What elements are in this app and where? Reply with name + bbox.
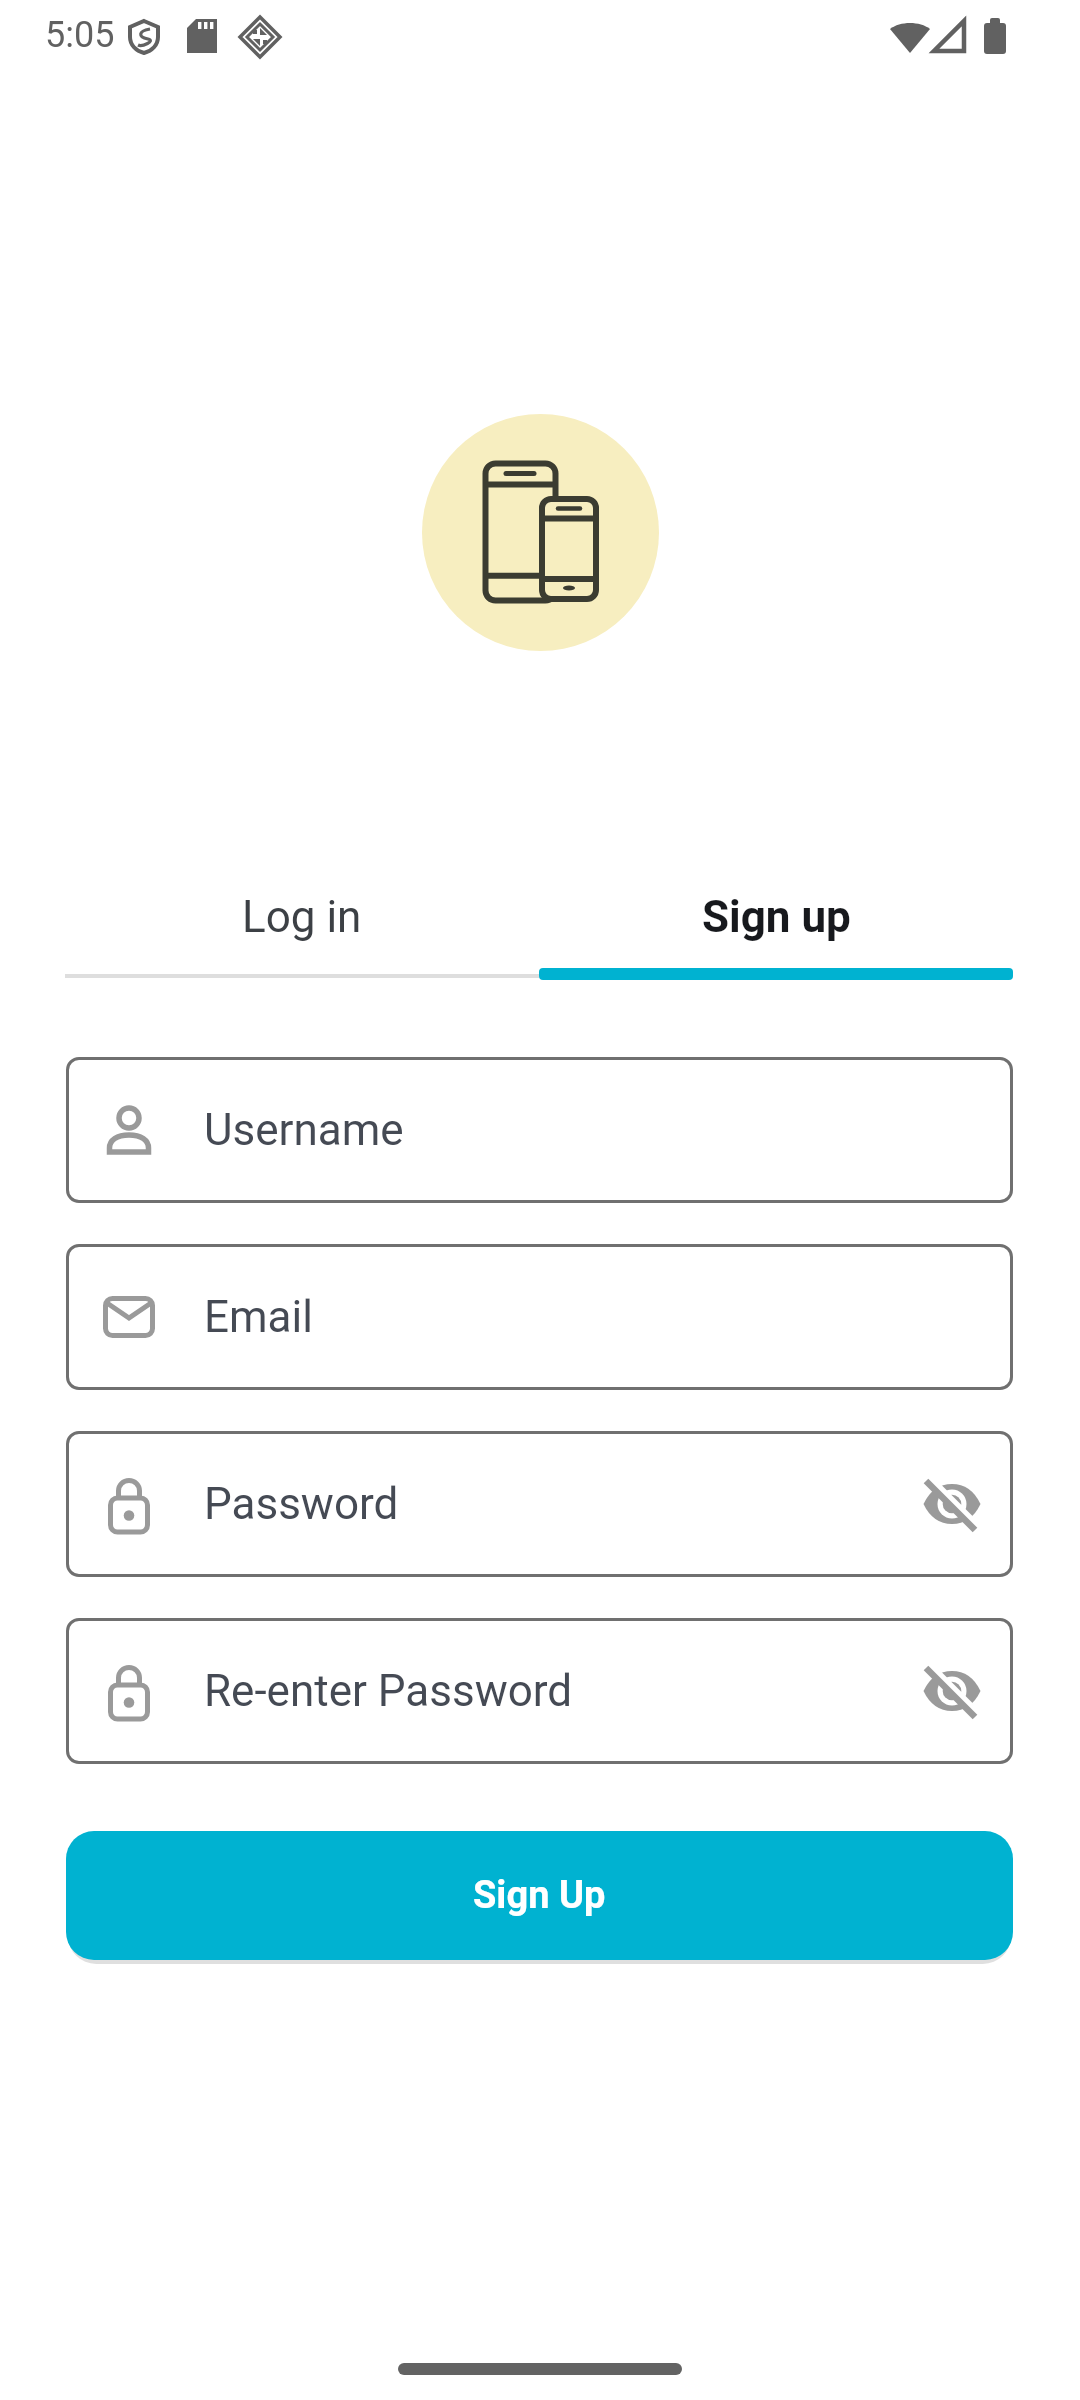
staticText: Log in bbox=[242, 891, 362, 943]
staticText: Username bbox=[204, 1104, 404, 1156]
button[interactable]: Re-enter Password bbox=[66, 1618, 1013, 1764]
staticText: Email bbox=[204, 1291, 313, 1343]
button[interactable]: Username bbox=[66, 1057, 1013, 1203]
staticText: Sign Up bbox=[473, 1873, 606, 1918]
button[interactable] bbox=[923, 1662, 981, 1720]
button[interactable]: Password bbox=[66, 1431, 1013, 1577]
staticText: Re-enter Password bbox=[204, 1665, 573, 1717]
staticText: Sign up bbox=[702, 891, 851, 943]
staticText: Password bbox=[204, 1478, 399, 1530]
button[interactable]: Log in bbox=[65, 872, 539, 962]
button[interactable]: Email bbox=[66, 1244, 1013, 1390]
button[interactable]: Sign up bbox=[539, 872, 1013, 962]
staticText: 5:05 bbox=[45, 14, 115, 56]
button[interactable]: Sign Up bbox=[66, 1831, 1013, 1960]
button[interactable] bbox=[923, 1475, 981, 1533]
